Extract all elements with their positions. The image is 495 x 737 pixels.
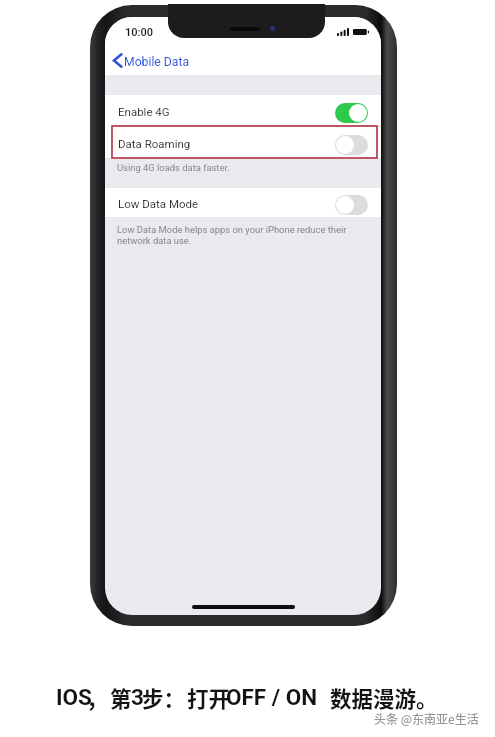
- staticText: Low Data Mode: [118, 197, 199, 210]
- button[interactable]: Switch off: [335, 135, 368, 155]
- button[interactable]: Enable 4G: [105, 95, 381, 126]
- staticText: 数据漫游。: [330, 682, 438, 713]
- staticText: 头条 @东南亚e生活: [374, 710, 479, 727]
- staticText: Enable 4G: [118, 105, 170, 118]
- button[interactable]: Switch on: [335, 103, 368, 123]
- staticText: 第: [110, 682, 132, 713]
- button[interactable]: Back to Mobile Data: [110, 49, 194, 71]
- staticText: OFF / ON: [226, 684, 318, 710]
- staticText: Mobile Data: [124, 55, 190, 69]
- staticText: 10:00: [125, 26, 154, 39]
- staticText: Data Roaming: [118, 137, 191, 150]
- staticText: 打开: [187, 682, 231, 713]
- button[interactable]: Switch off: [335, 195, 368, 215]
- staticText: 3: [131, 684, 144, 710]
- staticText: Low Data Mode helps apps on your iPhone …: [117, 224, 347, 246]
- button[interactable]: Data Roaming: [105, 127, 381, 158]
- staticText: IOS: [56, 684, 92, 710]
- button[interactable]: Low Data Mode: [105, 188, 381, 217]
- staticText: Using 4G loads data faster.: [117, 162, 230, 173]
- staticText: ，: [86, 682, 108, 713]
- staticText: 步：: [142, 682, 186, 713]
